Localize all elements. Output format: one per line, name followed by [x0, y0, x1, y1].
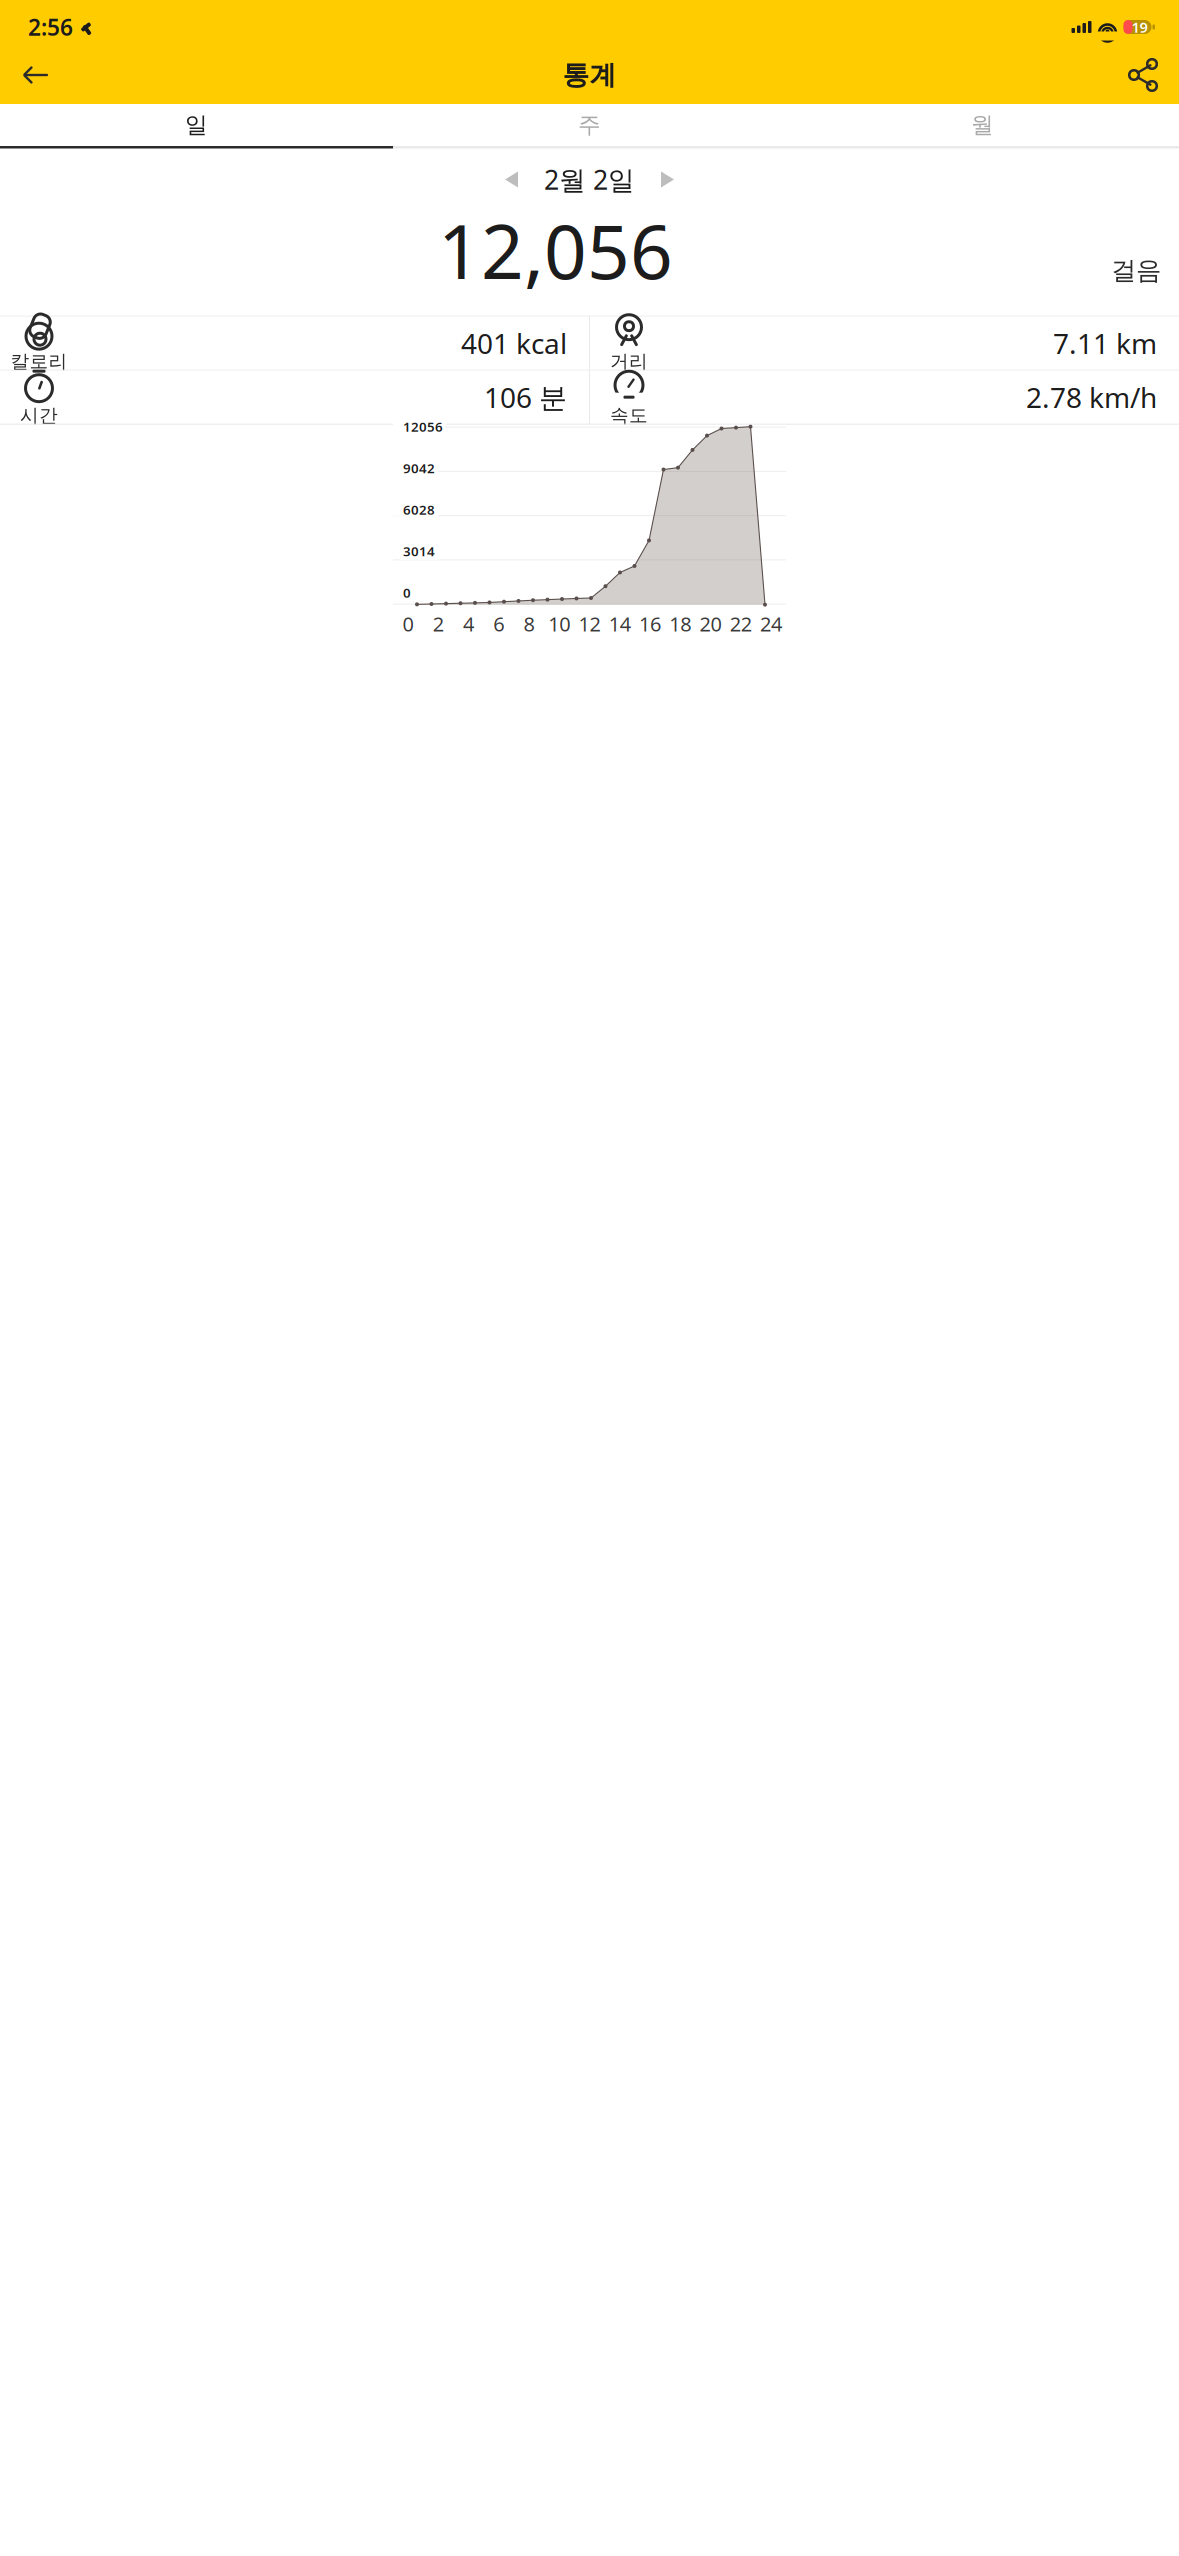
staticText: 2 [433, 610, 444, 637]
staticText: 106 분 [484, 379, 567, 416]
staticText: 7.11 km [1053, 325, 1157, 362]
staticText: 8 [523, 610, 534, 637]
staticText: 2.78 km/h [1026, 379, 1157, 416]
staticText: 6028 [403, 501, 435, 518]
staticText: 2월 2일 [544, 162, 635, 197]
staticText: 월 [971, 111, 994, 139]
button[interactable]: 시간 [0, 371, 589, 424]
staticText: 24 [760, 610, 782, 637]
button[interactable]: 거리 [590, 317, 1179, 370]
staticText: 걸음 [1111, 255, 1161, 286]
staticText: 시간 [20, 404, 58, 427]
staticText: 칼로리 [10, 350, 67, 373]
staticText: 19 [1131, 17, 1147, 37]
staticText: 3014 [403, 542, 435, 560]
staticText: 16 [639, 610, 661, 637]
staticText: 0 [403, 610, 414, 637]
staticText: 12 [578, 610, 600, 637]
button[interactable]: 주 [393, 104, 786, 146]
staticText: 18 [669, 610, 691, 637]
staticText: 2:56 [28, 12, 73, 42]
button[interactable]: 일 [0, 104, 393, 146]
button[interactable]: 월 [786, 104, 1179, 146]
button[interactable]: 다음 날짜 [645, 160, 689, 198]
staticText: 6 [493, 610, 504, 637]
staticText: 일 [185, 111, 208, 139]
button[interactable]: 칼로리 [0, 317, 589, 370]
staticText: 12,056 [438, 200, 673, 300]
staticText: 20 [699, 610, 721, 637]
button[interactable]: 공유 [1115, 53, 1171, 97]
staticText: 401 kcal [461, 325, 567, 362]
staticText: 9042 [403, 459, 435, 477]
staticText: 주 [578, 111, 601, 139]
button[interactable]: 속도 [590, 371, 1179, 424]
staticText: 속도 [610, 404, 648, 427]
staticText: 14 [609, 610, 631, 637]
button[interactable]: 뒤로 [8, 53, 64, 97]
staticText: 거리 [610, 350, 648, 373]
staticText: 4 [463, 610, 474, 637]
staticText: 0 [403, 584, 411, 601]
button[interactable]: 이전 날짜 [489, 160, 533, 198]
staticText: 12056 [403, 418, 443, 435]
staticText: 22 [730, 610, 752, 637]
staticText: 10 [548, 610, 570, 637]
staticText: 통계 [562, 59, 616, 91]
